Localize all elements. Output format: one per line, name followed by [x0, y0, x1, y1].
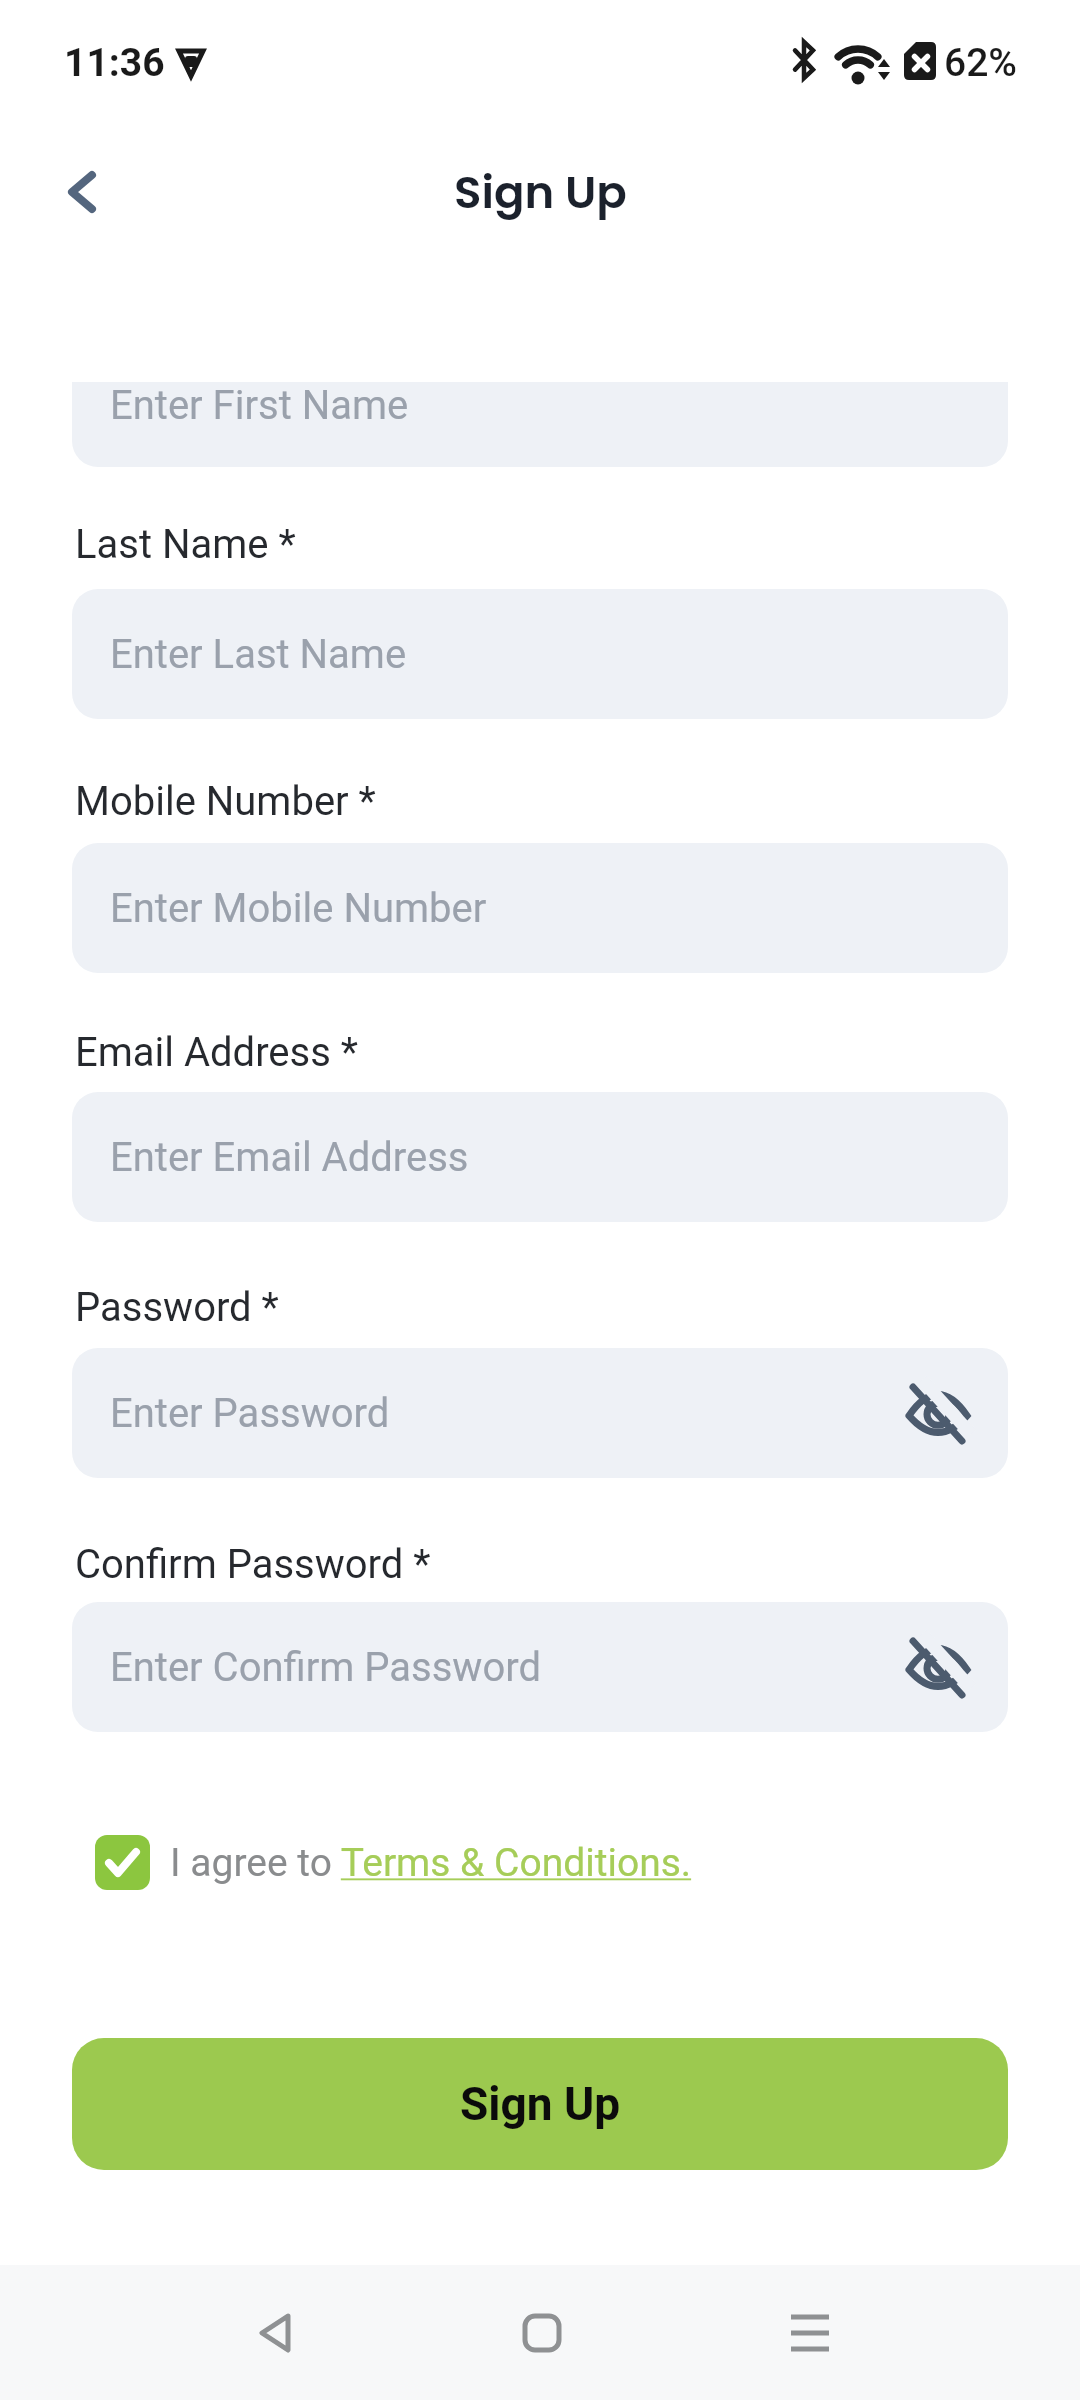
staticText: I agree to Terms & Conditions. — [170, 1840, 692, 1886]
staticText: 11:36 — [64, 40, 165, 86]
staticText: Enter Confirm Password — [110, 1644, 541, 1691]
button[interactable]: Sign Up — [72, 2038, 1008, 2170]
staticText: Enter Password — [110, 1390, 390, 1437]
button[interactable]: I agree to Terms & Conditions. — [95, 1835, 692, 1890]
staticText: Confirm Password * — [75, 1541, 431, 1588]
button[interactable]: Enter Email Address — [72, 1092, 1008, 1222]
staticText: Email Address * — [75, 1029, 358, 1076]
button[interactable] — [240, 2298, 310, 2368]
staticText: Password * — [75, 1284, 279, 1331]
staticText: Enter Last Name — [110, 631, 407, 678]
staticText: Enter First Name — [110, 382, 409, 429]
button[interactable] — [507, 2298, 577, 2368]
staticText: Mobile Number * — [75, 778, 376, 825]
button[interactable] — [48, 156, 120, 228]
staticText: 62% — [944, 40, 1017, 86]
button[interactable] — [905, 1634, 971, 1700]
staticText: Enter Mobile Number — [110, 885, 487, 932]
button[interactable]: Enter Mobile Number — [72, 843, 1008, 973]
button[interactable] — [905, 1380, 971, 1446]
staticText: Sign Up — [460, 2077, 621, 2131]
button[interactable]: Enter Confirm Password — [72, 1602, 1008, 1732]
button[interactable]: Enter Password — [72, 1348, 1008, 1478]
button[interactable]: Enter Last Name — [72, 589, 1008, 719]
staticText: Sign Up — [454, 161, 627, 224]
button[interactable] — [775, 2298, 845, 2368]
button[interactable]: Enter First Name — [72, 382, 1008, 467]
staticText: Last Name * — [75, 521, 296, 568]
staticText: Enter Email Address — [110, 1134, 469, 1181]
